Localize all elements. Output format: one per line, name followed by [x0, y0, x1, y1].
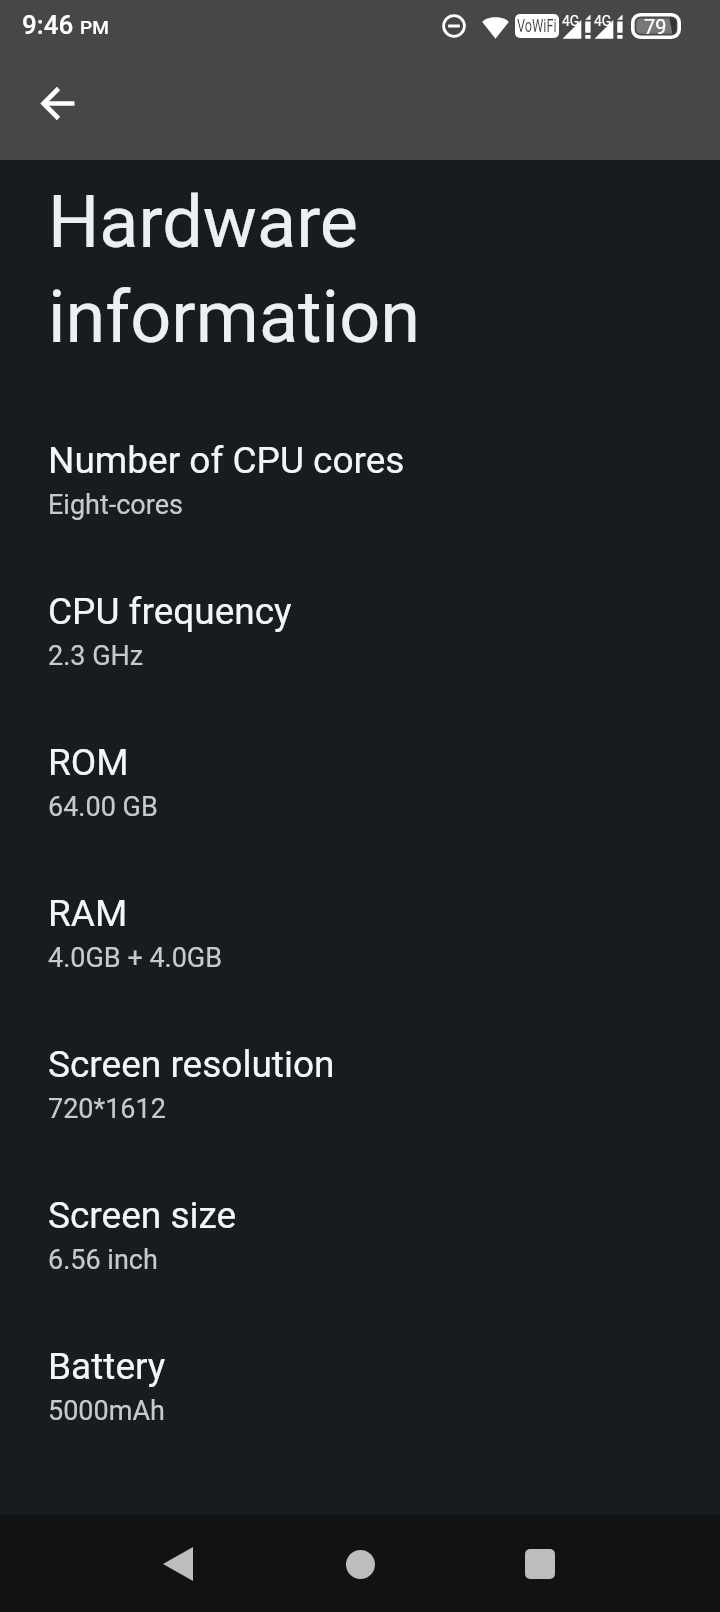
button[interactable]: Number of CPU cores: [0, 439, 720, 521]
button[interactable]: RAM: [0, 892, 720, 974]
staticText: Hardware information: [48, 180, 420, 360]
button[interactable]: Home: [320, 1524, 400, 1604]
button[interactable]: Back: [138, 1524, 218, 1604]
staticText: 79: [644, 15, 667, 38]
button[interactable]: Screen size: [0, 1194, 720, 1276]
staticText: Battery: [48, 1345, 166, 1388]
staticText: Screen resolution: [48, 1043, 335, 1086]
staticText: 2.3 GHz: [48, 640, 144, 672]
staticText: 5000mAh: [48, 1395, 165, 1427]
button[interactable]: Recent apps: [500, 1524, 580, 1604]
button[interactable]: Battery: [0, 1345, 720, 1427]
staticText: Number of CPU cores: [48, 439, 405, 482]
staticText: 4G: [562, 13, 580, 29]
staticText: 4.0GB + 4.0GB: [48, 942, 223, 974]
staticText: PM: [80, 16, 109, 38]
button[interactable]: ROM: [0, 741, 720, 823]
staticText: ROM: [48, 741, 129, 784]
staticText: 9:46: [22, 10, 74, 40]
staticText: 64.00 GB: [48, 791, 158, 823]
staticText: 720*1612: [48, 1093, 166, 1125]
button[interactable]: Back: [18, 63, 99, 144]
staticText: Eight-cores: [48, 489, 183, 521]
staticText: RAM: [48, 892, 128, 935]
staticText: CPU frequency: [48, 590, 292, 633]
button[interactable]: CPU frequency: [0, 590, 720, 672]
staticText: 4G: [594, 13, 612, 29]
button[interactable]: Screen resolution: [0, 1043, 720, 1125]
staticText: 6.56 inch: [48, 1244, 158, 1276]
staticText: Screen size: [48, 1194, 237, 1237]
